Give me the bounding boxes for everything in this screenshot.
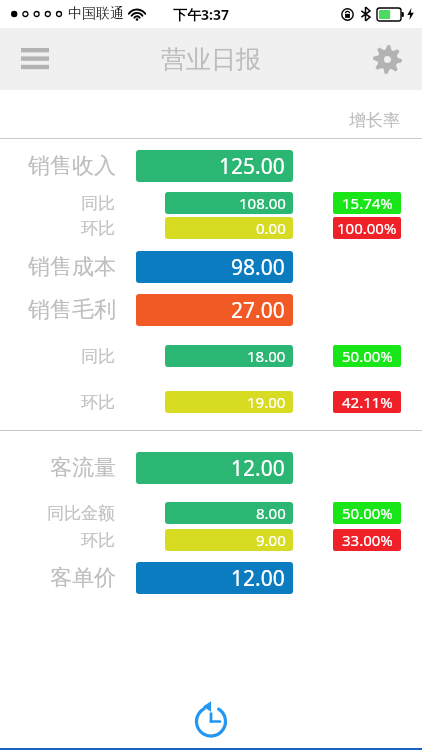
staticText: 客单价 bbox=[0, 564, 116, 592]
button[interactable]: 环比 bbox=[0, 217, 422, 239]
staticText: 9.00 bbox=[256, 530, 286, 550]
button[interactable]: 同比 bbox=[0, 192, 422, 214]
staticText: 环比 bbox=[0, 218, 115, 239]
staticText: 同比 bbox=[0, 346, 115, 367]
staticText: 27.00 bbox=[231, 296, 285, 325]
staticText: 108.00 bbox=[239, 193, 286, 213]
button[interactable]: 客流量 bbox=[0, 452, 422, 484]
staticText: 下午3:37 bbox=[173, 5, 229, 24]
button[interactable]: 同比金额 bbox=[0, 502, 422, 524]
staticText: 同比金额 bbox=[0, 503, 115, 524]
staticText: 98.00 bbox=[231, 253, 285, 282]
staticText: 33.00% bbox=[342, 530, 393, 550]
staticText: 销售成本 bbox=[0, 253, 116, 281]
staticText: 19.00 bbox=[247, 392, 286, 412]
staticText: 15.74% bbox=[342, 193, 393, 213]
staticText: 环比 bbox=[0, 530, 115, 551]
staticText: 营业日报 bbox=[161, 44, 261, 75]
staticText: 中国联通 bbox=[68, 5, 124, 23]
staticText: 增长率 bbox=[349, 110, 400, 131]
staticText: 42.11% bbox=[342, 392, 393, 412]
button[interactable]: History bbox=[189, 698, 233, 742]
button[interactable]: 客单价 bbox=[0, 562, 422, 594]
staticText: 12.00 bbox=[231, 564, 285, 593]
staticText: 销售毛利 bbox=[0, 296, 116, 324]
staticText: 同比 bbox=[0, 193, 115, 214]
button[interactable]: 销售收入 bbox=[0, 150, 422, 182]
staticText: 0.00 bbox=[256, 218, 286, 238]
button[interactable]: 销售成本 bbox=[0, 251, 422, 283]
button[interactable]: 环比 bbox=[0, 391, 422, 413]
staticText: 100.00% bbox=[337, 218, 397, 238]
staticText: 125.00 bbox=[219, 152, 285, 181]
staticText: 50.00% bbox=[342, 346, 393, 366]
staticText: 18.00 bbox=[247, 346, 286, 366]
button[interactable]: Menu bbox=[12, 36, 58, 82]
staticText: 50.00% bbox=[342, 503, 393, 523]
button[interactable]: 同比 bbox=[0, 345, 422, 367]
staticText: 12.00 bbox=[231, 454, 285, 483]
button[interactable]: 销售毛利 bbox=[0, 294, 422, 326]
staticText: 销售收入 bbox=[0, 152, 116, 180]
staticText: 客流量 bbox=[0, 454, 116, 482]
button[interactable]: 环比 bbox=[0, 529, 422, 551]
button[interactable]: Settings bbox=[364, 36, 410, 82]
staticText: 8.00 bbox=[256, 503, 286, 523]
staticText: 环比 bbox=[0, 392, 115, 413]
